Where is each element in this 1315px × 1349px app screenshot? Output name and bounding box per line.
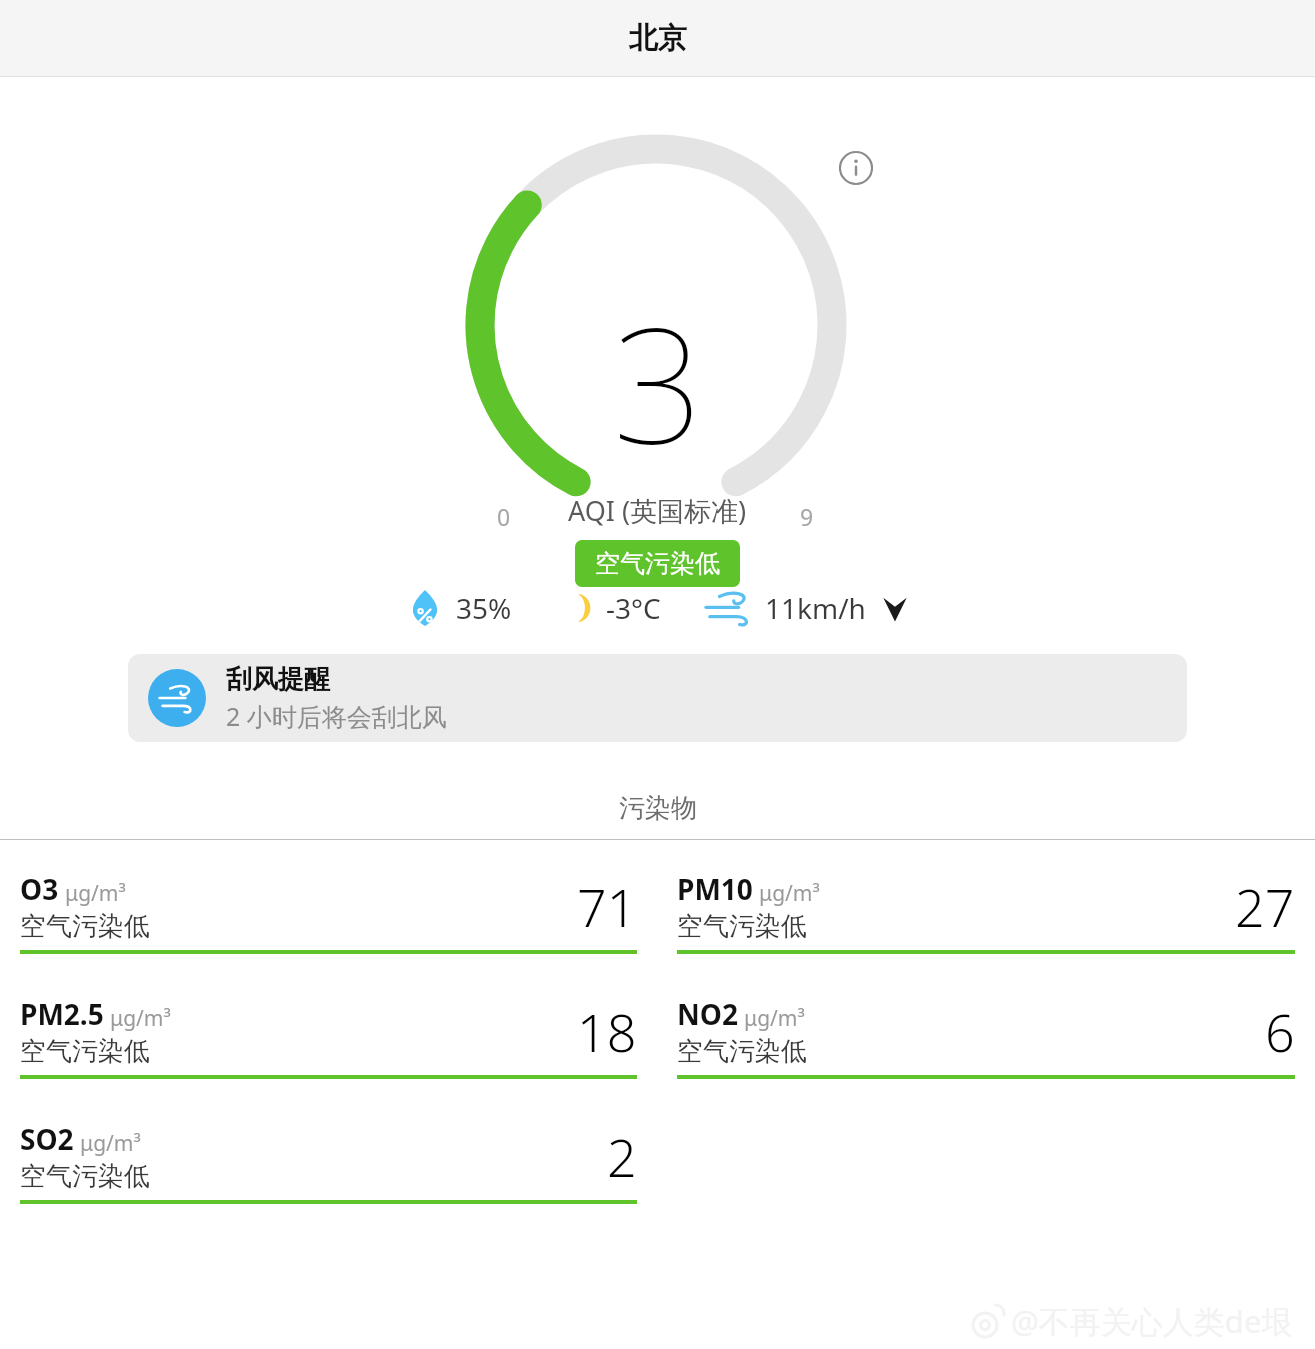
- staticText: μg/m³: [744, 1004, 805, 1033]
- staticText: 刮风提醒: [226, 663, 330, 696]
- staticText: NO2: [677, 995, 738, 1033]
- staticText: μg/m³: [80, 1129, 141, 1158]
- staticText: AQI (英国标准): [568, 492, 747, 529]
- staticText: PM2.5: [20, 995, 104, 1033]
- staticText: 北京: [629, 20, 687, 57]
- staticText: 2 小时后将会刮北风: [226, 699, 447, 733]
- staticText: @不再关心人类de垠: [1011, 1300, 1293, 1342]
- staticText: 6: [1265, 996, 1295, 1067]
- button[interactable]: SO2: [20, 1120, 637, 1204]
- staticText: O3: [20, 870, 59, 908]
- staticText: 0: [497, 501, 511, 532]
- staticText: μg/m³: [759, 879, 820, 908]
- staticText: 空气污染低: [20, 1160, 150, 1193]
- staticText: -3°C: [606, 589, 661, 627]
- staticText: SO2: [20, 1120, 74, 1158]
- staticText: 3: [612, 272, 704, 490]
- staticText: μg/m³: [110, 1004, 171, 1033]
- staticText: 空气污染低: [677, 910, 807, 943]
- staticText: 空气污染低: [595, 548, 720, 579]
- button[interactable]: 刮风提醒: [128, 654, 1187, 742]
- staticText: 18: [577, 996, 637, 1067]
- staticText: 空气污染低: [20, 1035, 150, 1068]
- button[interactable]: Info: [836, 148, 876, 188]
- staticText: 2: [607, 1121, 637, 1192]
- button[interactable]: O3: [20, 870, 637, 954]
- button[interactable]: NO2: [677, 995, 1295, 1079]
- staticText: PM10: [677, 870, 753, 908]
- staticText: 空气污染低: [20, 910, 150, 943]
- button[interactable]: PM2.5: [20, 995, 637, 1079]
- staticText: μg/m³: [65, 879, 126, 908]
- staticText: 空气污染低: [677, 1035, 807, 1068]
- staticText: 71: [577, 871, 637, 942]
- staticText: 27: [1235, 871, 1295, 942]
- button[interactable]: PM10: [677, 870, 1295, 954]
- staticText: 9: [800, 501, 814, 532]
- staticText: 11km/h: [765, 589, 866, 627]
- button[interactable]: 空气污染低: [575, 540, 740, 587]
- staticText: 35%: [456, 589, 512, 627]
- staticText: 污染物: [619, 792, 697, 825]
